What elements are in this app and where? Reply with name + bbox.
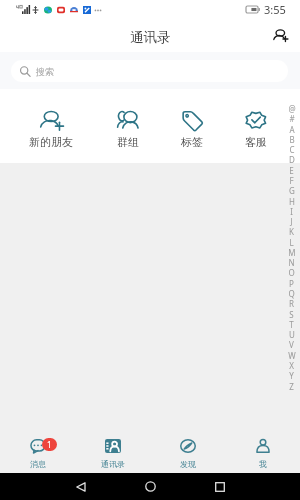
button[interactable]: Home — [115, 473, 185, 500]
button[interactable]: 我 — [225, 427, 300, 473]
staticText: 群组 — [117, 135, 139, 149]
staticText: L — [289, 237, 294, 248]
button[interactable]: Add contact — [269, 24, 291, 46]
button[interactable]: 搜索 — [11, 60, 288, 82]
button[interactable]: 通讯录 — [75, 427, 150, 473]
staticText: D — [289, 154, 295, 165]
staticText: P — [289, 278, 294, 289]
staticText: 通讯录 — [130, 29, 171, 46]
staticText: Y — [289, 370, 294, 381]
button[interactable]: 发现 — [150, 427, 225, 473]
button[interactable]: 客服 — [225, 89, 287, 163]
staticText: O — [288, 267, 295, 278]
button[interactable]: Recents — [185, 473, 255, 500]
staticText: E — [289, 165, 294, 176]
staticText: 搜索 — [36, 66, 54, 77]
staticText: A — [289, 124, 295, 135]
button[interactable]: 标签 — [161, 89, 223, 163]
staticText: K — [289, 226, 294, 237]
staticText: 发现 — [180, 459, 196, 469]
staticText: 新的朋友 — [29, 135, 73, 149]
staticText: N — [288, 257, 295, 268]
staticText: @ — [288, 103, 296, 114]
staticText: U — [289, 329, 295, 340]
staticText: 客服 — [245, 135, 267, 149]
staticText: V — [289, 339, 294, 350]
staticText: 通讯录 — [101, 459, 125, 469]
button[interactable]: 1 — [0, 427, 75, 473]
staticText: Z — [289, 381, 294, 392]
staticText: B — [289, 134, 295, 145]
button[interactable]: 新的朋友 — [20, 89, 82, 163]
staticText: C — [289, 144, 295, 155]
staticText: I — [290, 206, 293, 217]
staticText: 1 — [47, 439, 52, 450]
staticText: 标签 — [181, 135, 203, 149]
staticText: F — [289, 175, 294, 186]
staticText: T — [289, 319, 294, 330]
staticText: 消息 — [30, 459, 46, 469]
staticText: X — [289, 360, 294, 371]
staticText: J — [290, 216, 293, 227]
staticText: # — [289, 113, 295, 124]
staticText: H — [289, 196, 295, 207]
staticText: G — [289, 185, 295, 196]
staticText: R — [289, 298, 294, 309]
staticText: W — [288, 350, 296, 361]
button[interactable]: Back — [45, 473, 115, 500]
staticText: 我 — [259, 459, 267, 469]
staticText: M — [288, 247, 296, 258]
staticText: Q — [288, 288, 295, 299]
staticText: 3:55 — [264, 2, 286, 17]
button[interactable]: 群组 — [97, 89, 159, 163]
button[interactable]: Alphabet index — [283, 103, 300, 393]
staticText: S — [289, 309, 294, 320]
